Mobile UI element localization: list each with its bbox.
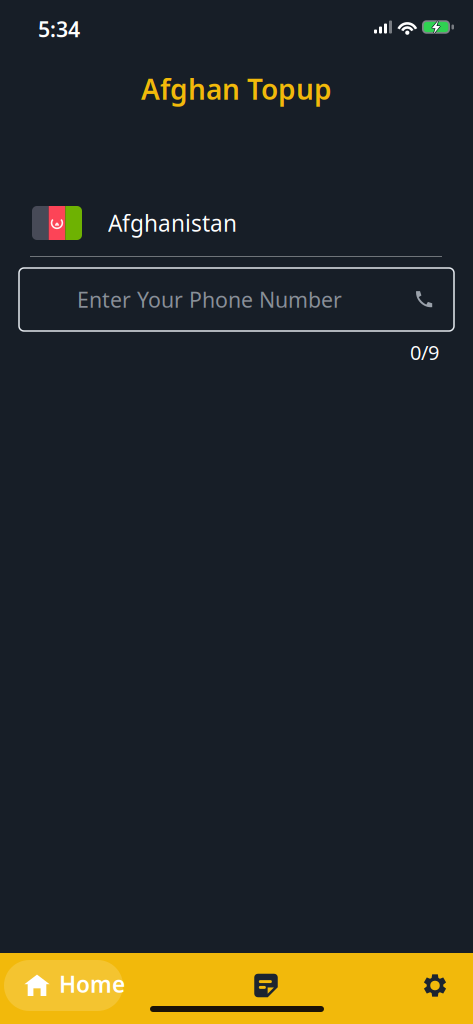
staticText: 0/9 — [410, 339, 439, 366]
button[interactable]: Notes — [0, 953, 60, 1004]
button[interactable]: Home — [0, 953, 119, 1004]
button[interactable]: Afghanistan — [0, 206, 473, 240]
staticText: 5:34 — [38, 15, 80, 43]
staticText: Enter Your Phone Number — [77, 285, 342, 314]
staticText: Home — [59, 969, 125, 999]
staticText: Afghanistan — [108, 208, 237, 238]
staticText: Afghan Topup — [141, 70, 332, 108]
button[interactable]: Settings — [0, 953, 56, 1004]
button[interactable]: Enter Your Phone Number — [0, 257, 473, 331]
